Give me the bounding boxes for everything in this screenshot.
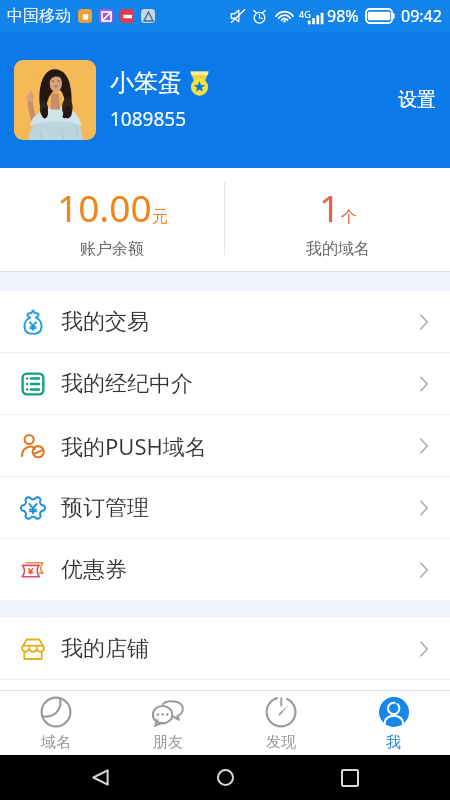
staticText: 4G [299,8,311,20]
staticText: 09:42 [401,5,442,27]
button[interactable]: 我的PUSH域名 [0,415,450,476]
button[interactable]: 我的经纪中介 [0,353,450,414]
button[interactable]: 我的交易 [0,291,450,352]
button[interactable]: Avatar [14,60,96,140]
staticText: 我 [386,733,401,752]
staticText: 发现 [266,733,296,752]
staticText: 中国移动 [7,6,71,26]
staticText: 我的交易 [61,308,149,336]
staticText: 朋友 [153,733,183,752]
staticText: 1089855 [110,106,187,132]
staticText: 个 [341,207,357,227]
button[interactable]: 10.00 [0,168,224,272]
button[interactable]: Back [84,761,117,794]
button[interactable]: 朋友 [112,691,224,755]
staticText: 元 [152,207,168,227]
button[interactable]: Recents [334,762,366,794]
staticText: 账户余额 [80,239,144,259]
staticText: 98% [327,5,359,27]
button[interactable]: 优惠券 [0,539,450,600]
staticText: 小笨蛋 [110,68,182,98]
button[interactable]: 设置 [392,80,442,120]
button[interactable]: 1 [225,168,450,272]
button[interactable]: 我的店铺 [0,618,450,679]
button[interactable]: 我 [337,691,450,755]
button[interactable]: 域名 [0,691,112,755]
staticText: 我的经纪中介 [61,370,193,398]
staticText: 预订管理 [61,494,149,522]
staticText: 1 [319,182,341,232]
staticText: 10.00 [57,182,152,232]
staticText: 我的域名 [306,239,370,259]
button[interactable]: 预订管理 [0,477,450,538]
staticText: 我的PUSH域名 [61,431,207,461]
staticText: 设置 [398,88,436,112]
staticText: 域名 [41,733,71,752]
button[interactable]: 发现 [224,691,337,755]
staticText: 优惠券 [61,556,127,584]
button[interactable]: Home [209,761,242,794]
staticText: 我的店铺 [61,635,149,663]
